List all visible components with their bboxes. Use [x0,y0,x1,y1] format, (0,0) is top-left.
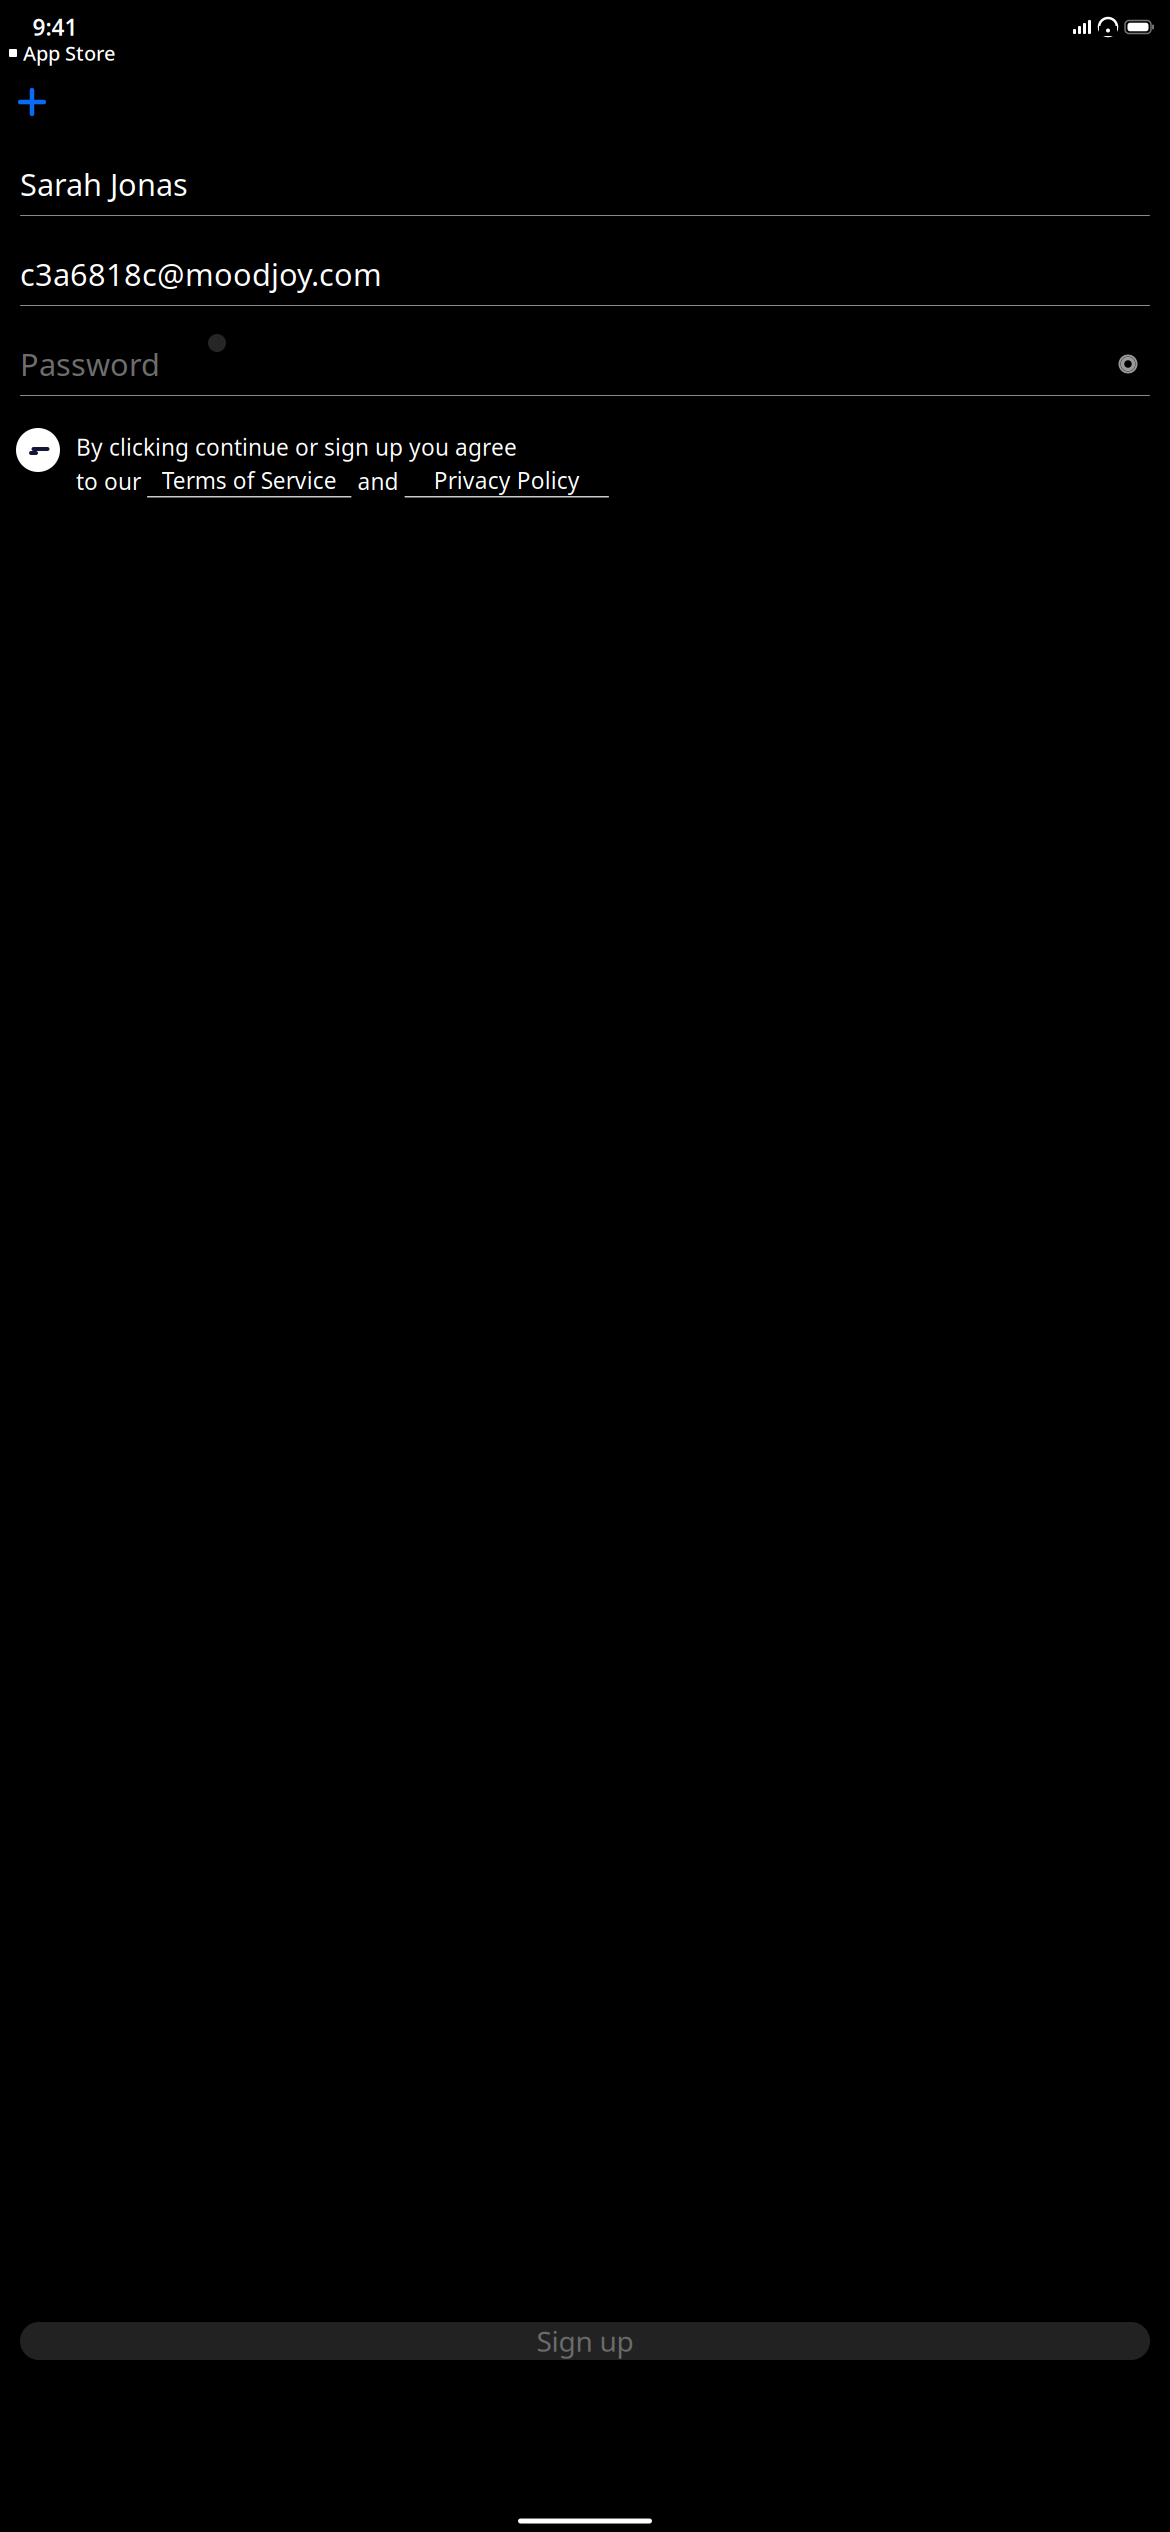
staticText: to our [76,466,147,496]
staticText: By clicking continue or sign up you agre… [76,432,517,462]
staticText: Privacy Policy [434,465,580,495]
staticText: and [351,466,404,496]
staticText: c3a6818c@moodjoy.com [20,254,382,294]
staticText: Sign up [536,2322,633,2360]
button[interactable]: Privacy Policy [404,465,609,497]
button[interactable]: Terms of Service [147,465,351,497]
staticText: App Store [23,40,115,66]
staticText: Password [20,344,160,384]
button[interactable]: Close [10,80,54,124]
staticText: Terms of Service [162,465,337,495]
staticText: 9:41 [32,12,77,42]
button[interactable]: Agree to terms [14,426,62,474]
button[interactable]: Sign up [20,2322,1150,2360]
button[interactable]: Show password [1106,346,1150,382]
staticText: Sarah Jonas [20,164,188,204]
